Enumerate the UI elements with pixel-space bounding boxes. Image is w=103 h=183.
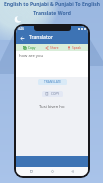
staticText: Copy	[28, 46, 36, 50]
staticText: Translate Word	[33, 10, 71, 17]
staticText: Tusi kiven ho	[39, 104, 65, 110]
staticText: Speak	[72, 46, 81, 50]
button[interactable]: TRANSLATE	[38, 79, 67, 85]
button[interactable]: Speak	[66, 46, 82, 50]
staticText: how are you	[19, 53, 44, 59]
staticText: English to Punjabi & Punjabi To English	[4, 1, 100, 8]
staticText: Translator	[29, 34, 53, 41]
staticText: 3:26	[18, 27, 24, 31]
staticText: COPY	[51, 92, 60, 96]
button[interactable]: Home	[48, 167, 57, 176]
button[interactable]: Copy	[22, 46, 37, 50]
button[interactable]: Back	[18, 34, 26, 42]
staticText: TRANSLATE	[44, 80, 61, 84]
button[interactable]: Recent apps	[27, 167, 36, 176]
button[interactable]: Share	[44, 46, 60, 50]
staticText: Share	[50, 46, 59, 50]
button[interactable]: COPY	[42, 91, 63, 97]
button[interactable]: Back	[68, 167, 77, 176]
